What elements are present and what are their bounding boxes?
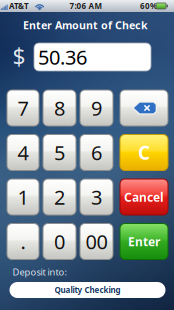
staticText: Quality Checking (54, 285, 120, 295)
staticText: 0 (54, 228, 65, 255)
button[interactable]: 9 (80, 90, 113, 126)
button[interactable]: 4 (7, 134, 39, 170)
button[interactable]: Cancel (120, 179, 168, 215)
staticText: Deposit into: (12, 266, 67, 278)
button[interactable]: 8 (43, 90, 76, 126)
staticText: Enter Amount of Check (23, 18, 148, 32)
staticText: Cancel (124, 189, 164, 205)
staticText: 3 (91, 184, 102, 210)
button[interactable]: 2 (43, 179, 76, 215)
button[interactable]: 6 (80, 134, 113, 170)
staticText: 50.36 (38, 44, 87, 70)
staticText: . (20, 228, 25, 255)
staticText: $ (12, 41, 25, 71)
staticText: 4 (17, 139, 28, 166)
button[interactable]: 0 (43, 223, 76, 259)
staticText: 9 (91, 95, 102, 121)
staticText: C (138, 140, 150, 165)
staticText: 2 (54, 184, 65, 210)
button[interactable]: 5 (43, 134, 76, 170)
staticText: 8 (54, 95, 65, 121)
staticText: 6 (91, 139, 102, 166)
button[interactable]: Quality Checking (9, 282, 165, 298)
staticText: 00 (85, 228, 107, 255)
button[interactable]: 3 (80, 179, 113, 215)
staticText: 7:06 AM (69, 1, 102, 11)
button[interactable]: C (120, 134, 168, 170)
button[interactable]: 7 (7, 90, 39, 126)
button[interactable]: 1 (7, 179, 39, 215)
button[interactable]: Delete (120, 90, 168, 126)
button[interactable]: . (7, 223, 39, 259)
staticText: AT&T (9, 1, 29, 11)
button[interactable]: Enter (120, 223, 168, 259)
button[interactable]: 00 (80, 223, 113, 259)
staticText: 1 (17, 184, 28, 210)
staticText: 60% (140, 1, 157, 11)
staticText: 7 (17, 95, 28, 121)
staticText: 5 (54, 139, 65, 166)
staticText: Enter (128, 233, 160, 249)
